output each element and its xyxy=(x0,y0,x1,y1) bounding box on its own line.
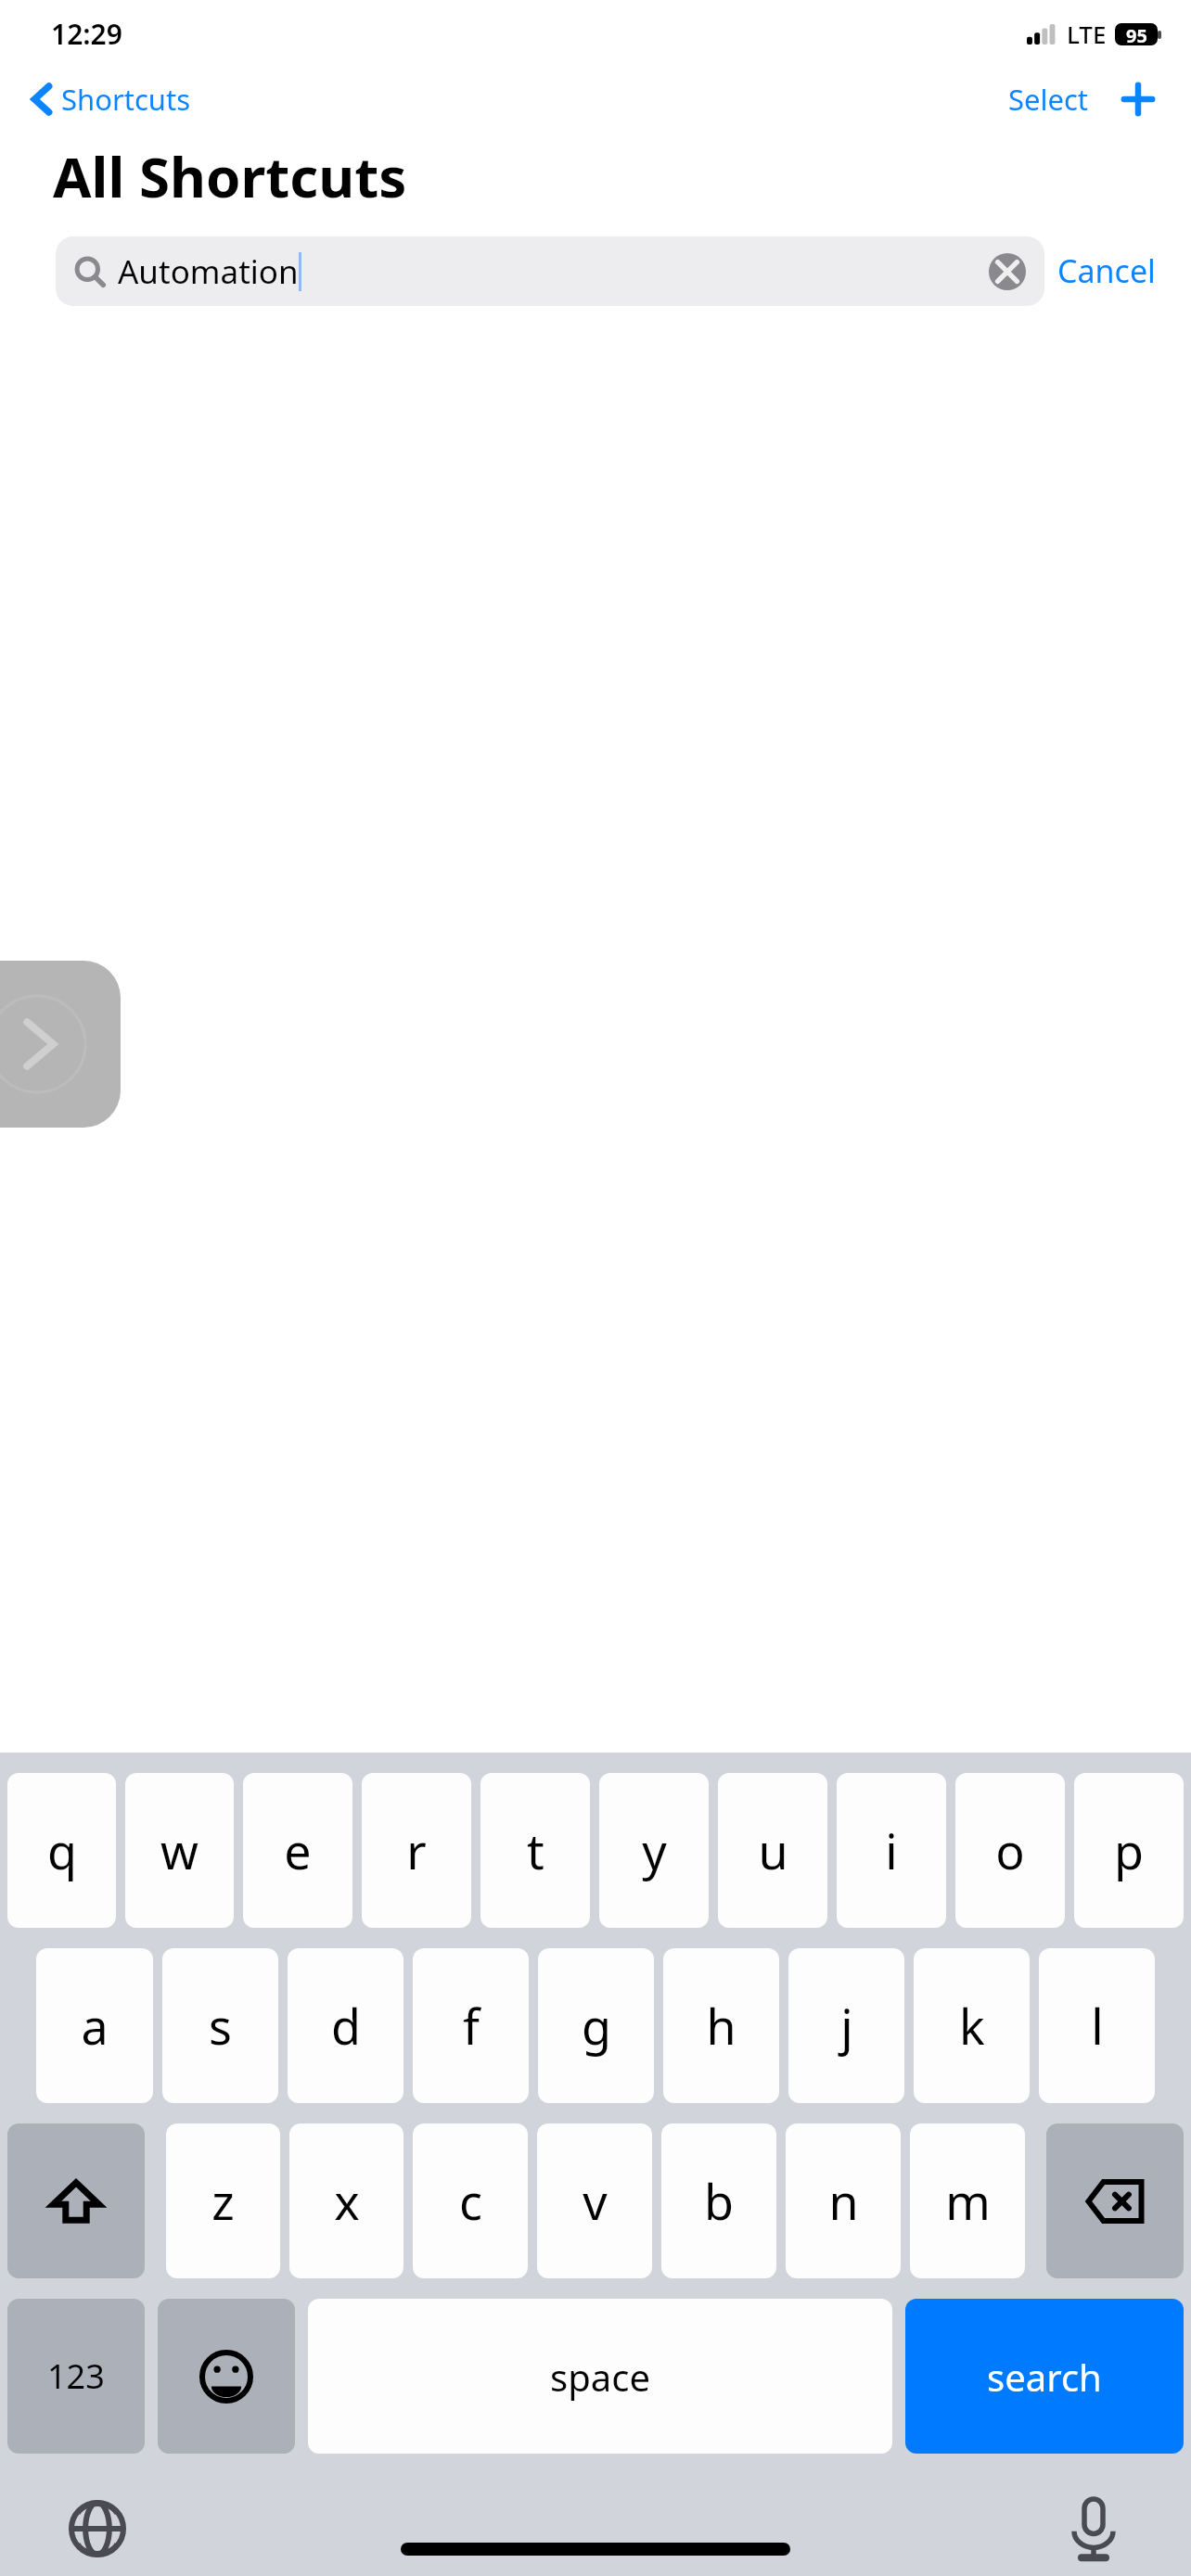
staticText: k xyxy=(959,1993,985,2059)
staticText: n xyxy=(828,2168,859,2234)
staticText: d xyxy=(331,1993,361,2059)
button[interactable]: g xyxy=(538,1948,654,2103)
staticText: Automation xyxy=(118,249,299,294)
button[interactable]: Select xyxy=(1003,72,1095,126)
staticText: 12:29 xyxy=(51,15,122,53)
staticText: e xyxy=(284,1817,312,1883)
staticText: p xyxy=(1114,1817,1144,1883)
button[interactable]: 123 xyxy=(7,2299,145,2454)
staticText: h xyxy=(706,1993,736,2059)
button[interactable]: Clear text xyxy=(989,253,1026,290)
staticText: j xyxy=(840,1993,853,2059)
button[interactable]: Shift xyxy=(7,2123,145,2278)
button[interactable]: f xyxy=(413,1948,529,2103)
button[interactable]: m xyxy=(910,2123,1025,2278)
staticText: u xyxy=(758,1817,788,1883)
staticText: a xyxy=(81,1993,109,2059)
staticText: c xyxy=(459,2168,482,2234)
button[interactable]: o xyxy=(955,1773,1065,1928)
button[interactable]: n xyxy=(786,2123,901,2278)
staticText: t xyxy=(527,1817,544,1883)
button[interactable]: Emoji xyxy=(158,2299,295,2454)
button[interactable]: Cancel xyxy=(1044,240,1169,301)
button[interactable]: l xyxy=(1039,1948,1155,2103)
staticText: f xyxy=(463,1993,480,2059)
button[interactable]: d xyxy=(288,1948,403,2103)
button[interactable]: j xyxy=(788,1948,904,2103)
staticText: i xyxy=(885,1817,898,1883)
staticText: search xyxy=(987,2352,1102,2402)
button[interactable]: v xyxy=(537,2123,652,2278)
staticText: x xyxy=(334,2168,360,2234)
staticText: s xyxy=(209,1993,232,2059)
staticText: space xyxy=(550,2352,650,2402)
button[interactable]: y xyxy=(599,1773,709,1928)
staticText: o xyxy=(995,1817,1025,1883)
button[interactable]: Shortcuts xyxy=(26,74,197,124)
staticText: Cancel xyxy=(1057,249,1156,292)
button[interactable]: h xyxy=(663,1948,779,2103)
staticText: r xyxy=(406,1817,427,1883)
staticText: Shortcuts xyxy=(61,80,191,119)
button[interactable]: c xyxy=(413,2123,528,2278)
button[interactable]: x xyxy=(289,2123,403,2278)
staticText: b xyxy=(704,2168,734,2234)
button[interactable]: t xyxy=(480,1773,590,1928)
staticText: v xyxy=(583,2168,608,2234)
button[interactable]: r xyxy=(362,1773,471,1928)
staticText: 95 xyxy=(1126,23,1147,45)
button[interactable]: a xyxy=(36,1948,153,2103)
staticText: LTE xyxy=(1067,18,1107,50)
staticText: g xyxy=(582,1993,611,2059)
button[interactable]: Shortcut placeholder xyxy=(0,961,121,1128)
button[interactable]: s xyxy=(162,1948,278,2103)
staticText: l xyxy=(1091,1993,1104,2059)
button[interactable]: i xyxy=(837,1773,946,1928)
button[interactable]: Automation xyxy=(56,236,1044,306)
button[interactable]: Add shortcut xyxy=(1113,74,1163,124)
button[interactable]: b xyxy=(661,2123,776,2278)
staticText: m xyxy=(945,2168,991,2234)
staticText: 123 xyxy=(47,2353,105,2399)
button[interactable]: k xyxy=(914,1948,1030,2103)
button[interactable]: search xyxy=(905,2299,1184,2454)
button[interactable]: Dictate xyxy=(1052,2487,1135,2570)
button[interactable]: e xyxy=(243,1773,352,1928)
button[interactable]: u xyxy=(718,1773,827,1928)
staticText: All Shortcuts xyxy=(53,138,407,214)
button[interactable]: z xyxy=(166,2123,280,2278)
button[interactable]: Delete xyxy=(1046,2123,1184,2278)
staticText: w xyxy=(160,1817,198,1883)
button[interactable]: w xyxy=(125,1773,234,1928)
staticText: y xyxy=(642,1817,667,1883)
staticText: z xyxy=(211,2168,235,2234)
staticText: Select xyxy=(1008,80,1089,119)
button[interactable]: q xyxy=(7,1773,116,1928)
button[interactable]: space xyxy=(308,2299,892,2454)
button[interactable]: p xyxy=(1074,1773,1184,1928)
button[interactable]: Switch keyboard xyxy=(56,2487,139,2570)
staticText: q xyxy=(47,1817,77,1883)
